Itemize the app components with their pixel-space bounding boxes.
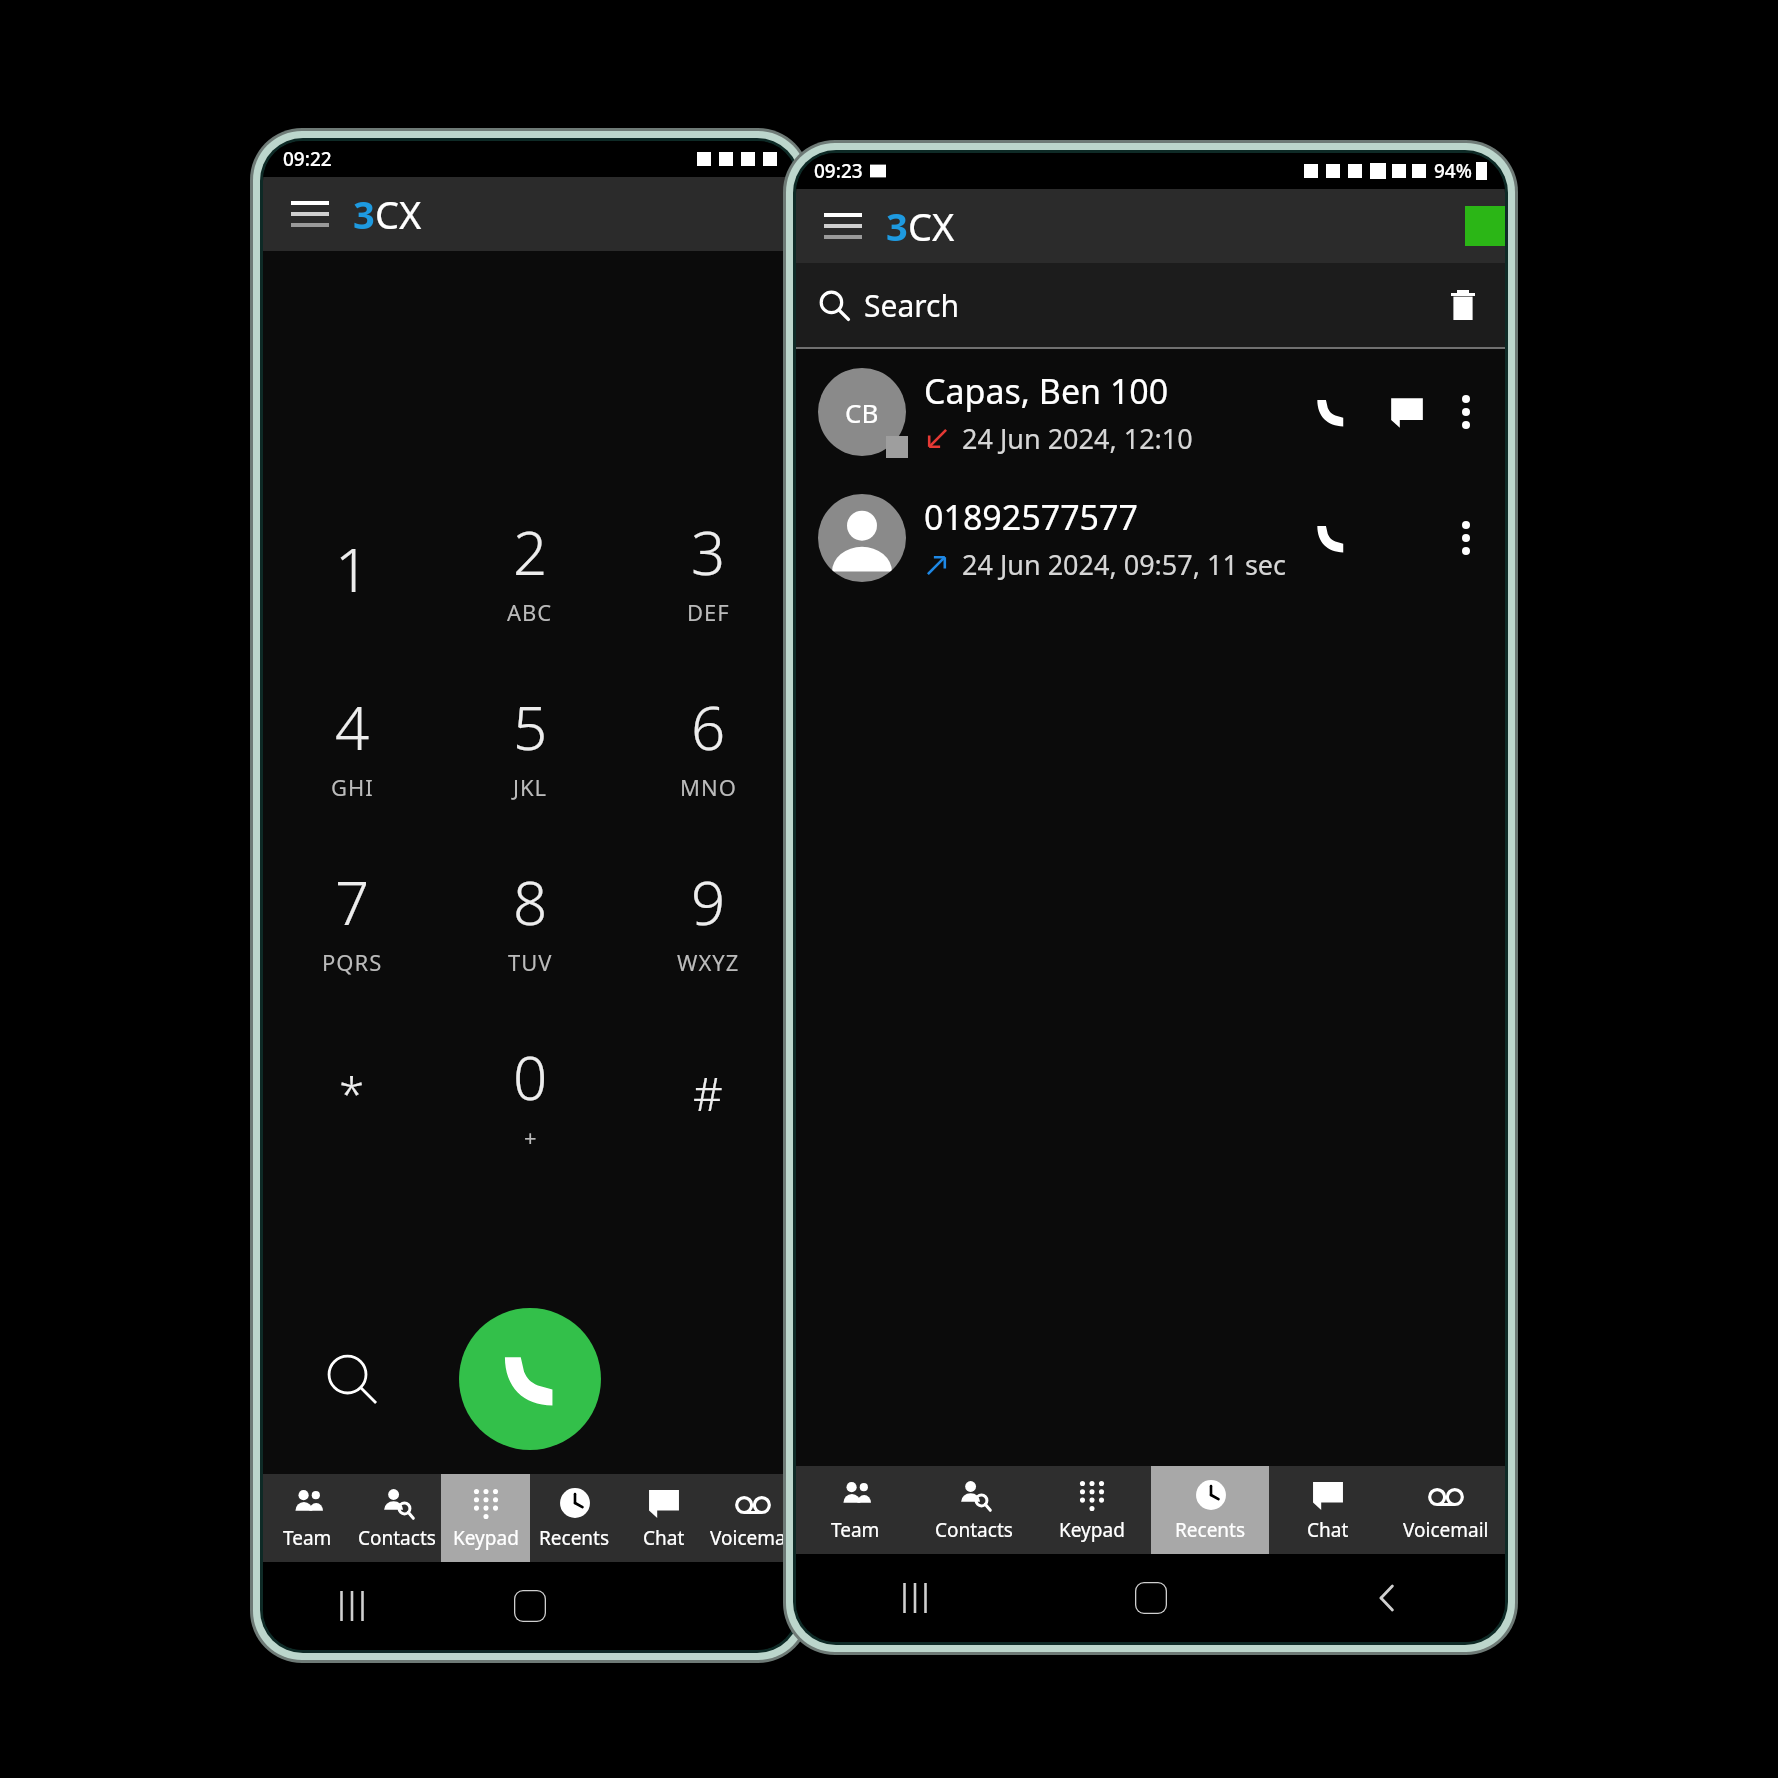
staticText: 94% — [1434, 158, 1472, 184]
staticText: 6 — [691, 686, 726, 768]
button[interactable]: More options — [1439, 511, 1493, 565]
button[interactable]: Search — [307, 1334, 397, 1424]
staticText: TUV — [508, 947, 553, 977]
button[interactable]: Call — [1299, 506, 1363, 570]
staticText: * — [339, 1062, 365, 1125]
staticText: 5 — [513, 686, 548, 768]
staticText: Search — [864, 285, 959, 326]
staticText: 3 — [691, 511, 726, 593]
staticText: 24 Jun 2024, 12:10 — [962, 420, 1193, 457]
button[interactable]: Search — [796, 263, 1505, 347]
button[interactable]: Back — [1362, 1573, 1412, 1623]
button[interactable]: 3 — [619, 481, 797, 656]
button[interactable]: 5 — [441, 656, 619, 831]
button[interactable]: 9 — [619, 831, 797, 1006]
staticText: 01892577577 — [924, 494, 1138, 540]
button[interactable]: CB — [796, 349, 1505, 475]
staticText: # — [693, 1062, 723, 1125]
button[interactable]: Team — [263, 1474, 352, 1562]
staticText: DEF — [687, 597, 730, 627]
staticText: CB — [845, 395, 879, 430]
staticText: 9 — [691, 861, 726, 943]
staticText: Keypad — [1059, 1517, 1125, 1543]
button[interactable]: Delete all — [1443, 285, 1483, 325]
button[interactable]: Recents — [530, 1474, 619, 1562]
button[interactable]: 0 — [441, 1006, 619, 1181]
staticText: Team — [831, 1517, 880, 1543]
button[interactable]: 01892577577 — [796, 475, 1505, 601]
button[interactable]: Recents — [1151, 1466, 1269, 1554]
staticText: 2 — [513, 511, 548, 593]
button[interactable]: Menu — [287, 191, 333, 237]
button[interactable]: Recent apps — [327, 1581, 377, 1631]
staticText: Chat — [1307, 1517, 1349, 1543]
staticText: ABC — [507, 597, 553, 627]
staticText: 7 — [335, 861, 370, 943]
button[interactable]: Menu — [820, 203, 866, 249]
staticText: Chat — [643, 1525, 685, 1551]
button[interactable]: Home — [505, 1581, 555, 1631]
button[interactable]: 1 — [263, 481, 441, 656]
staticText: Keypad — [453, 1525, 519, 1551]
staticText: JKL — [513, 772, 548, 802]
button[interactable]: Keypad — [1033, 1466, 1151, 1554]
staticText: PQRS — [322, 947, 383, 977]
button[interactable]: Contacts — [352, 1474, 441, 1562]
button[interactable]: Team — [796, 1466, 915, 1554]
staticText: 3 — [886, 200, 908, 252]
staticText: 3 — [353, 188, 375, 240]
staticText: 4 — [335, 686, 370, 768]
staticText: Voicemail — [1403, 1517, 1489, 1543]
staticText: 1 — [335, 528, 370, 610]
staticText: WXYZ — [677, 947, 740, 977]
staticText: Team — [283, 1525, 332, 1551]
staticText: 09:22 — [283, 146, 332, 172]
staticText: 0 — [513, 1036, 548, 1118]
staticText: Voicemail — [710, 1525, 796, 1551]
staticText: Capas, Ben 100 — [924, 368, 1169, 414]
button[interactable]: Keypad — [441, 1474, 530, 1562]
button[interactable]: 4 — [263, 656, 441, 831]
staticText: Recents — [539, 1525, 610, 1551]
button[interactable]: Home — [1126, 1573, 1176, 1623]
button[interactable]: Chat — [1269, 1466, 1387, 1554]
button[interactable]: 7 — [263, 831, 441, 1006]
button[interactable]: Contacts — [915, 1466, 1033, 1554]
button[interactable]: * — [263, 1006, 441, 1181]
button[interactable]: Call — [1299, 380, 1363, 444]
staticText: CX — [375, 188, 422, 240]
button[interactable]: Chat — [619, 1474, 708, 1562]
staticText: 24 Jun 2024, 09:57, 11 sec — [962, 546, 1286, 583]
staticText: GHI — [331, 772, 374, 802]
button[interactable]: Voicemail — [708, 1474, 797, 1562]
button[interactable]: Voicemail — [1387, 1466, 1505, 1554]
button[interactable]: More options — [1439, 385, 1493, 439]
button[interactable]: # — [619, 1006, 797, 1181]
staticText: CX — [908, 200, 955, 252]
button[interactable]: Chat — [1375, 380, 1439, 444]
button[interactable]: 8 — [441, 831, 619, 1006]
staticText: 8 — [513, 861, 548, 943]
button[interactable]: Recent apps — [890, 1573, 940, 1623]
staticText: 09:23 — [814, 158, 863, 184]
staticText: Contacts — [358, 1525, 436, 1551]
button[interactable]: 6 — [619, 656, 797, 831]
staticText: MNO — [680, 772, 737, 802]
button[interactable]: 2 — [441, 481, 619, 656]
staticText: Contacts — [935, 1517, 1013, 1543]
staticText: Recents — [1175, 1517, 1246, 1543]
staticText: + — [524, 1122, 538, 1152]
button[interactable]: Call — [459, 1308, 601, 1450]
